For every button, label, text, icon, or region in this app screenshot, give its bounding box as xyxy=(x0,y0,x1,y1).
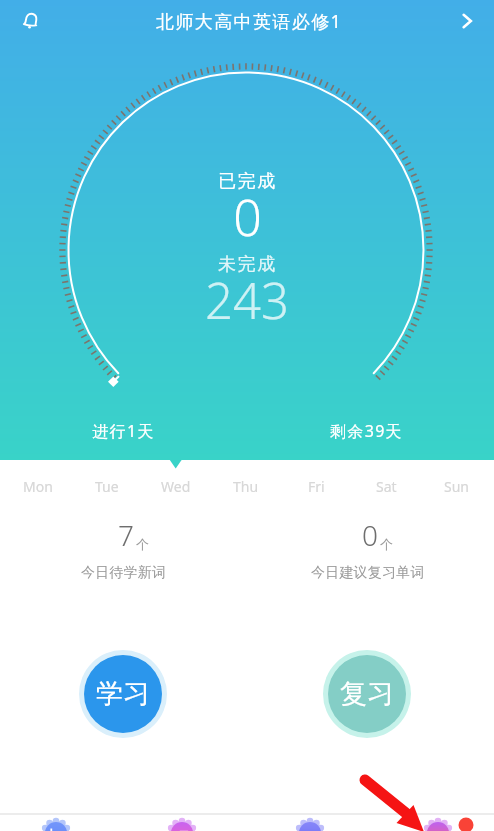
staticText: 学习 xyxy=(96,677,150,711)
staticText: 243 xyxy=(205,267,289,334)
button[interactable]: Discover xyxy=(265,815,355,831)
staticText: 今日待学新词 xyxy=(81,564,167,582)
staticText: Tue xyxy=(95,477,119,496)
staticText: Mon xyxy=(23,477,53,496)
staticText: 0 xyxy=(362,516,378,554)
staticText: Sat xyxy=(376,477,397,496)
button[interactable]: Next xyxy=(450,4,484,38)
staticText: 个 xyxy=(136,536,149,552)
button[interactable]: Fri xyxy=(281,474,351,498)
button[interactable]: Word book xyxy=(137,815,227,831)
button[interactable]: Sat xyxy=(351,474,421,498)
button[interactable]: Thu xyxy=(211,474,281,498)
staticText: Thu xyxy=(233,477,259,496)
staticText: 剩余39天 xyxy=(330,420,403,442)
button[interactable]: 学习 xyxy=(79,650,167,738)
staticText: 北师大高中英语必修1 xyxy=(156,9,343,34)
button[interactable]: Me xyxy=(393,815,483,831)
button[interactable]: Mon xyxy=(3,474,72,498)
button[interactable]: 复习 xyxy=(323,650,411,738)
staticText: 0 xyxy=(233,183,262,251)
button[interactable]: 7 xyxy=(34,516,214,590)
button[interactable]: Tue xyxy=(72,474,141,498)
staticText: 复习 xyxy=(340,677,394,711)
staticText: 7 xyxy=(118,516,134,554)
staticText: Sun xyxy=(444,477,469,496)
staticText: 已完成 xyxy=(218,170,277,193)
button[interactable]: Study xyxy=(11,815,101,831)
staticText: 个 xyxy=(380,536,393,552)
staticText: Wed xyxy=(161,477,191,496)
button[interactable]: 0 xyxy=(278,516,458,590)
staticText: 未完成 xyxy=(218,253,277,276)
button[interactable]: Notifications xyxy=(14,4,48,38)
staticText: 进行1天 xyxy=(92,420,155,442)
staticText: 今日建议复习单词 xyxy=(311,564,425,582)
button[interactable]: Sun xyxy=(421,474,491,498)
button[interactable]: Wed xyxy=(141,474,211,498)
staticText: Fri xyxy=(308,477,325,496)
